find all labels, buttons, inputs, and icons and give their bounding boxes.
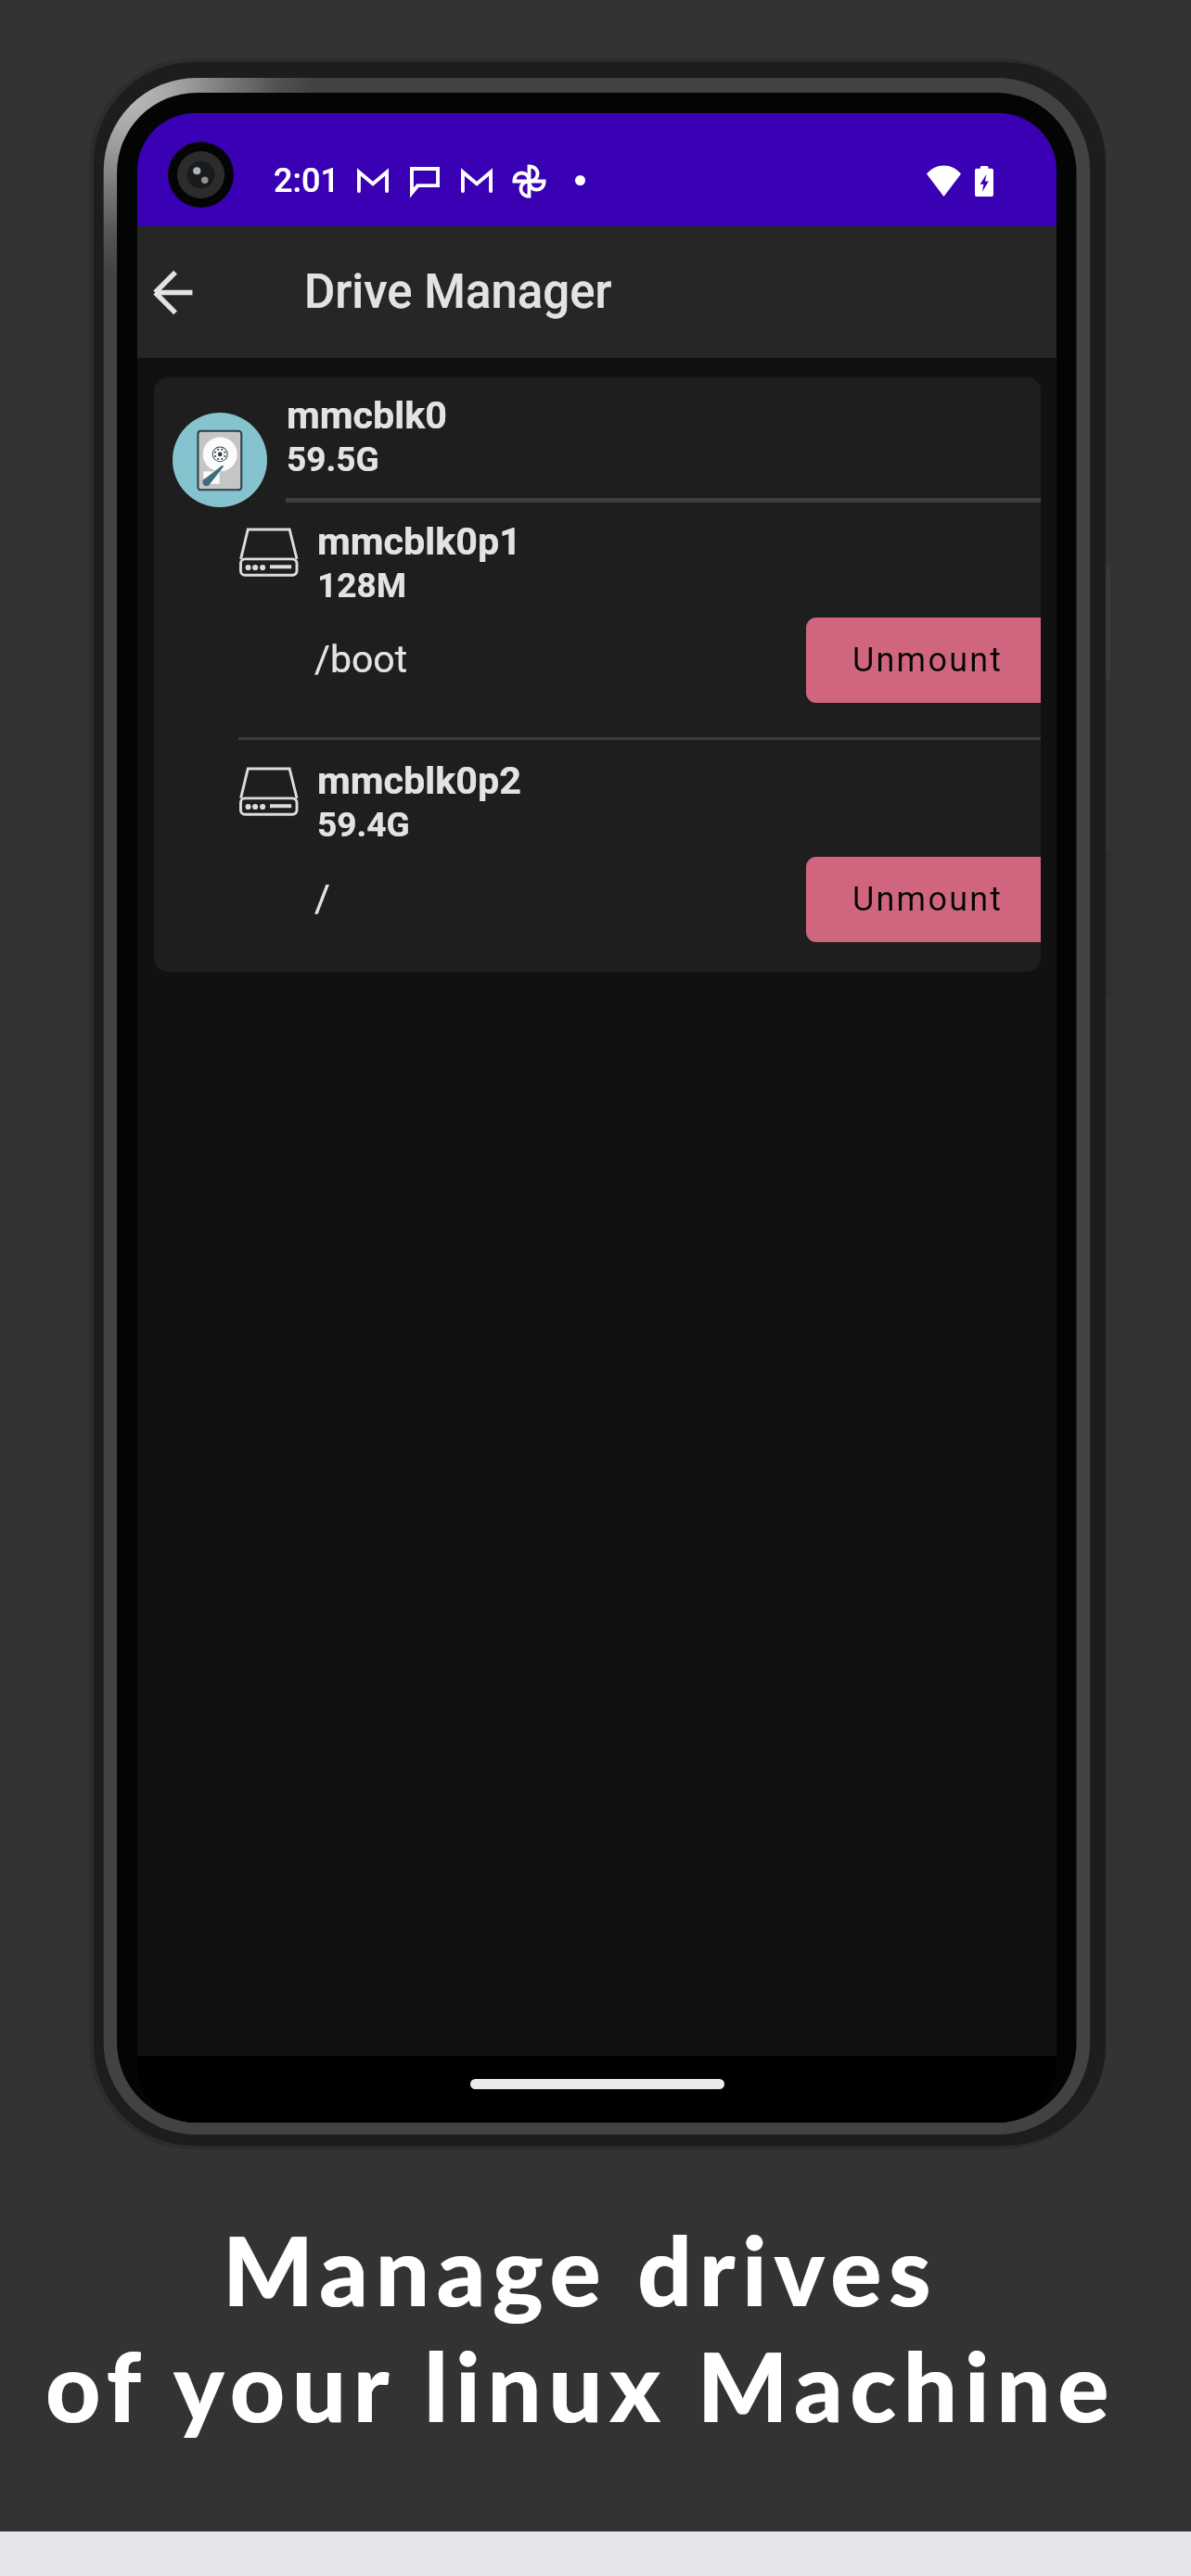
staticText: 2:01 bbox=[274, 161, 339, 200]
staticText: /boot bbox=[314, 637, 408, 682]
staticText: 59.5G bbox=[287, 440, 379, 479]
button[interactable]: Unmount bbox=[806, 857, 1041, 942]
button[interactable]: mmcblk0 bbox=[154, 377, 1041, 499]
staticText: Drive Manager bbox=[304, 264, 612, 320]
staticText: Manage drives bbox=[223, 2212, 939, 2327]
button[interactable]: Back bbox=[137, 226, 245, 358]
staticText: mmcblk0 bbox=[287, 393, 447, 438]
staticText: Unmount bbox=[852, 880, 1004, 919]
button[interactable]: mmcblk0p1 bbox=[154, 499, 1041, 733]
button[interactable]: mmcblk0p2 bbox=[154, 738, 1041, 972]
staticText: of your linux Machine bbox=[45, 2327, 1117, 2442]
staticText: mmcblk0p2 bbox=[317, 759, 521, 803]
staticText: 128M bbox=[317, 566, 407, 606]
staticText: Unmount bbox=[852, 641, 1004, 680]
button[interactable]: Unmount bbox=[806, 618, 1041, 703]
staticText: / bbox=[314, 876, 330, 921]
staticText: mmcblk0p1 bbox=[317, 519, 521, 564]
staticText: 59.4G bbox=[317, 805, 410, 845]
